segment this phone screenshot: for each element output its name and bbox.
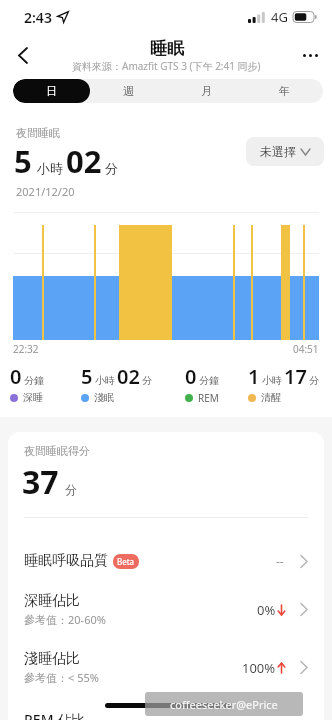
staticText: 月	[201, 84, 212, 98]
staticText: 小時	[95, 374, 115, 387]
staticText: 分	[65, 482, 77, 497]
button[interactable]: 週	[90, 79, 167, 103]
button[interactable]: 未選擇	[246, 137, 324, 166]
staticText: 深睡佔比	[24, 592, 80, 610]
staticText: Beta	[117, 556, 135, 567]
button[interactable]: 年	[245, 79, 323, 103]
staticText: 5	[81, 363, 93, 390]
staticText: 100%	[242, 659, 276, 677]
staticText: --	[276, 553, 284, 569]
staticText: coffeeseeker@ePrice	[170, 697, 278, 712]
staticText: 22:32	[13, 342, 39, 356]
staticText: 分	[142, 374, 152, 387]
staticText: 1	[248, 363, 260, 390]
staticText: 淺眠	[94, 391, 114, 404]
button[interactable]: 月	[167, 79, 245, 103]
staticText: 參考值：20-60%	[24, 612, 106, 627]
staticText: 2021/12/20	[16, 184, 75, 199]
staticText: 日	[46, 84, 57, 98]
staticText: 37	[22, 460, 59, 504]
staticText: REM	[198, 391, 219, 405]
staticText: 資料來源：Amazfit GTS 3 (下午 2:41 同步)	[72, 59, 261, 73]
button[interactable]: 深睡佔比	[24, 592, 308, 627]
staticText: 分鐘	[24, 374, 44, 387]
button[interactable]	[8, 41, 36, 69]
staticText: 淺睡佔比	[24, 650, 80, 668]
staticText: 參考值：< 55%	[24, 670, 99, 685]
staticText: 0%	[257, 601, 276, 619]
staticText: 小時	[37, 160, 63, 176]
staticText: 4G	[271, 8, 288, 26]
staticText: 2:43	[24, 8, 52, 27]
staticText: 分	[105, 160, 118, 176]
staticText: 週	[123, 84, 134, 98]
staticText: 02	[117, 363, 140, 390]
staticText: 04:51	[293, 342, 319, 356]
staticText: 睡眠	[150, 38, 184, 59]
staticText: 未選擇	[260, 144, 296, 159]
staticText: 夜間睡眠	[16, 126, 60, 140]
staticText: 小時	[262, 374, 282, 387]
staticText: 5	[14, 140, 32, 182]
staticText: 年	[279, 84, 290, 98]
staticText: 夜間睡眠得分	[24, 444, 90, 458]
staticText: REM 佔比	[24, 710, 86, 720]
staticText: 分	[309, 374, 319, 387]
button[interactable]	[303, 54, 318, 57]
staticText: 02	[66, 140, 102, 182]
button[interactable]: 淺睡佔比	[24, 650, 308, 685]
staticText: 0	[185, 363, 197, 390]
staticText: 0	[10, 363, 22, 390]
staticText: 睡眠呼吸品質	[24, 552, 108, 570]
staticText: 深睡	[23, 391, 43, 404]
staticText: 17	[284, 363, 307, 390]
button[interactable]: 睡眠呼吸品質	[24, 552, 308, 570]
staticText: 分鐘	[199, 374, 219, 387]
button[interactable]: 日	[13, 79, 90, 103]
staticText: 清醒	[261, 391, 281, 404]
